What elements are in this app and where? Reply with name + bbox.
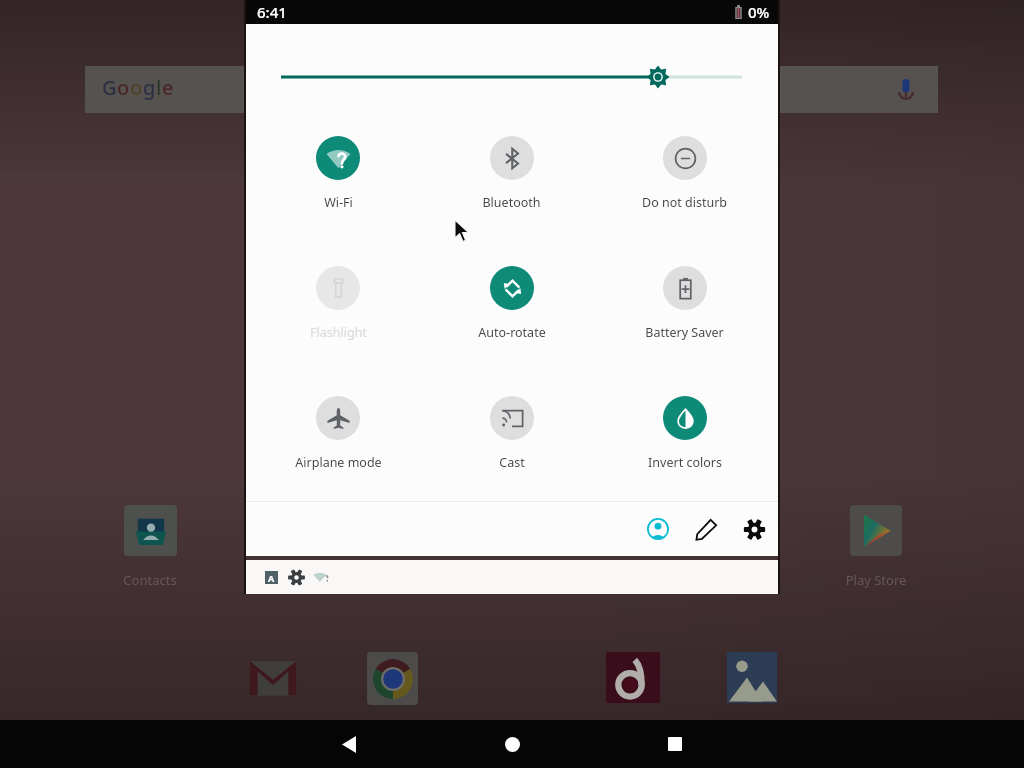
button[interactable]: Flashlight	[251, 247, 425, 377]
button[interactable]: Home	[488, 720, 536, 768]
button[interactable]: G	[85, 66, 938, 113]
staticText: Do not disturb	[642, 194, 727, 211]
staticText: Contacts	[90, 571, 210, 589]
staticText: Airplane mode	[295, 454, 382, 471]
staticText: Flashlight	[310, 324, 367, 341]
button[interactable]: Gmail	[248, 653, 298, 703]
button[interactable]: Bluetooth	[425, 117, 598, 247]
staticText: G	[102, 74, 117, 101]
staticText: Battery Saver	[645, 324, 724, 341]
button[interactable]: Gallery	[727, 652, 777, 703]
button[interactable]: Auto-rotate	[425, 247, 598, 377]
button[interactable]: Play Store	[850, 505, 902, 556]
staticText: o	[130, 74, 143, 101]
button[interactable]: Recents	[651, 720, 699, 768]
staticText: l	[156, 74, 162, 101]
other: Voice search	[897, 77, 915, 103]
button[interactable]: Do not disturb	[598, 117, 771, 247]
button[interactable]: Music	[606, 652, 660, 703]
button[interactable]: Settings	[730, 505, 778, 553]
staticText: 6:41	[257, 2, 287, 22]
staticText: A	[268, 572, 275, 584]
button[interactable]: Wi-Fi	[251, 117, 425, 247]
staticText: 0%	[748, 2, 770, 22]
button[interactable]: Back	[325, 720, 373, 768]
button[interactable]: Edit	[682, 505, 730, 553]
button[interactable]: Airplane mode	[251, 377, 425, 507]
button[interactable]: Battery Saver	[598, 247, 771, 377]
staticText: Bluetooth	[482, 194, 541, 211]
staticText: Auto-rotate	[478, 324, 546, 341]
button[interactable]: Chrome	[367, 652, 418, 705]
button[interactable]: Cast	[425, 377, 598, 507]
staticText: o	[117, 74, 130, 101]
staticText: g	[143, 74, 156, 101]
staticText: Play Store	[816, 571, 936, 589]
button[interactable]: Invert colors	[598, 377, 771, 507]
staticText: Wi-Fi	[324, 194, 353, 211]
staticText: e	[162, 74, 174, 101]
button[interactable]: Contacts	[124, 505, 177, 556]
button[interactable]: User	[634, 505, 682, 553]
staticText: Invert colors	[648, 454, 722, 471]
staticText: Cast	[499, 454, 525, 471]
